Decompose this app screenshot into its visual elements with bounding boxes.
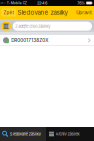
staticText: Sledované zásilky — [17, 9, 67, 16]
staticText: Upravit — [76, 10, 91, 15]
button[interactable]: Zpět — [1, 8, 16, 17]
staticText: Zadejte číslo zásilky — [15, 24, 50, 29]
button[interactable]: DR00017138Z0X — [0, 35, 94, 46]
staticText: Zpět — [4, 10, 14, 15]
button[interactable]: Sledované zásilky — [0, 127, 46, 141]
staticText: 76% — [77, 1, 85, 5]
staticText: Archiv zásilek — [55, 132, 79, 136]
button[interactable]: Upravit — [75, 8, 93, 17]
button[interactable]: Scan barcode — [1, 22, 11, 31]
staticText: DR00017138Z0X — [11, 37, 48, 43]
button[interactable]: Archiv zásilek — [46, 127, 94, 141]
staticText: 22:46 — [37, 1, 47, 5]
staticText: T-Mobile CZ — [7, 1, 27, 5]
staticText: Sledované zásilky — [10, 132, 41, 136]
